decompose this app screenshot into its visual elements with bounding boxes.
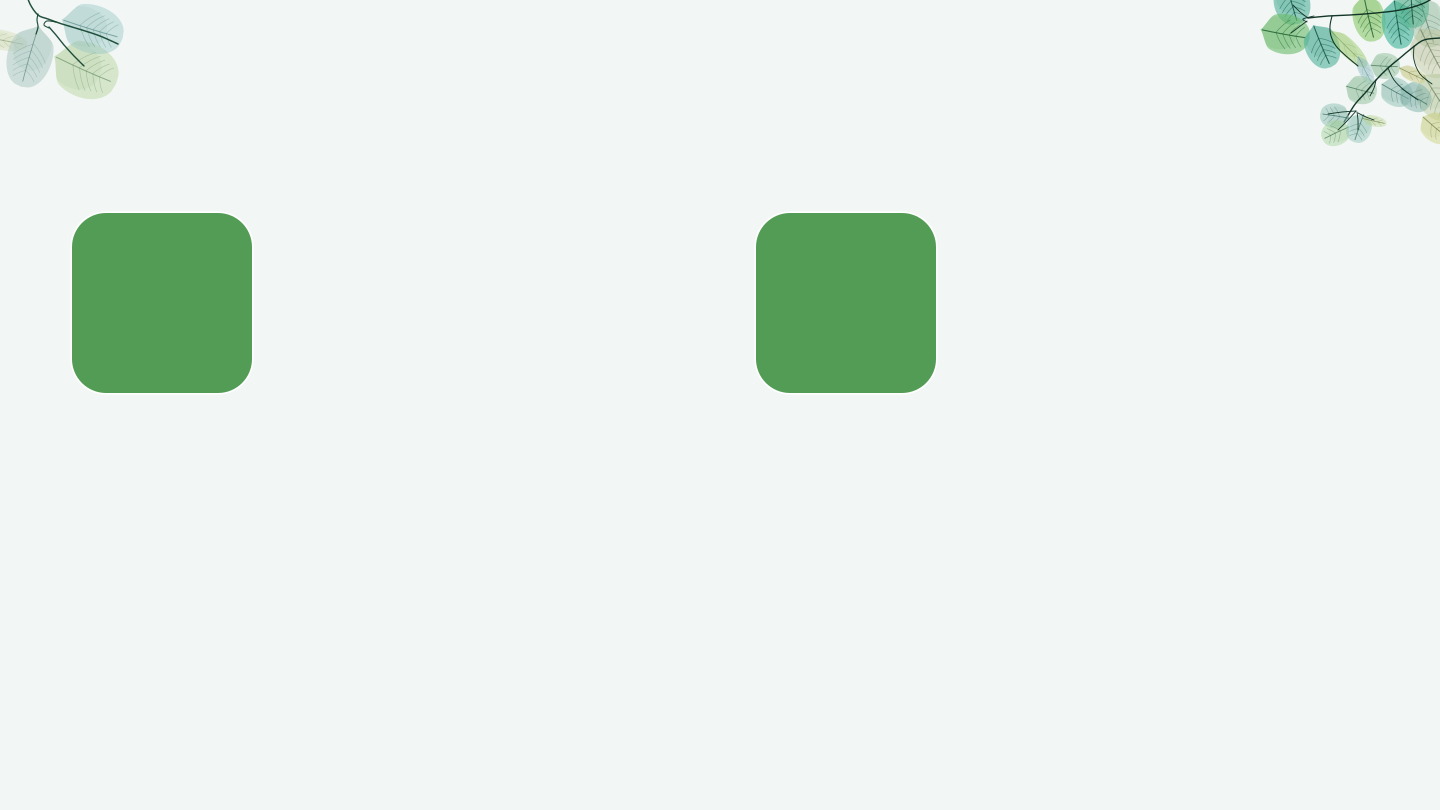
button[interactable]: Card <box>70 211 254 395</box>
button[interactable]: Card <box>754 211 938 395</box>
